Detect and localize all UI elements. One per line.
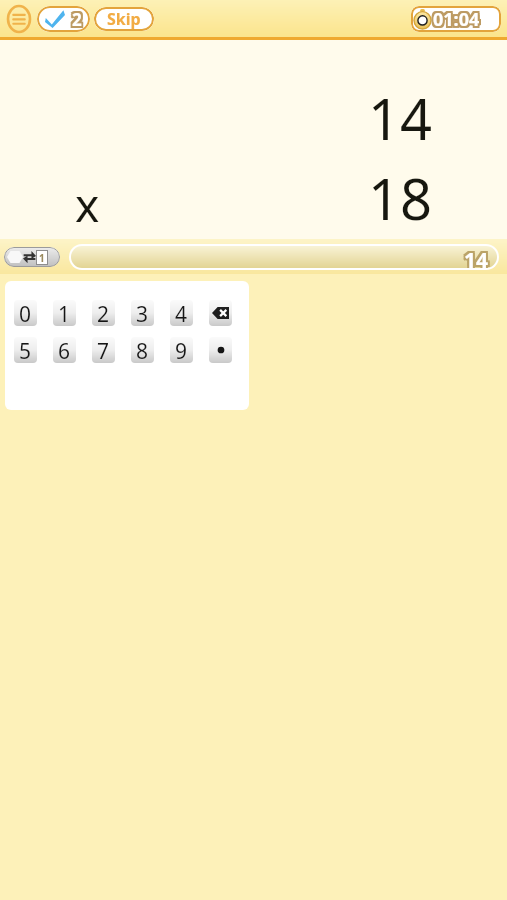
staticText: 2 bbox=[70, 6, 80, 29]
staticText: 14 bbox=[466, 246, 491, 268]
staticText: 14 bbox=[464, 246, 489, 266]
staticText: 14 bbox=[464, 248, 489, 268]
staticText: 2 bbox=[97, 300, 110, 326]
staticText: 7 bbox=[97, 337, 110, 363]
staticText: 01:04 bbox=[431, 6, 478, 30]
staticText: 3 bbox=[136, 300, 149, 326]
staticText: 01:04 bbox=[431, 9, 478, 32]
staticText: 01:04 bbox=[433, 9, 480, 32]
staticText: x bbox=[75, 173, 100, 236]
button[interactable]: Menu bbox=[4, 4, 34, 34]
button[interactable]: 14 bbox=[71, 246, 497, 268]
staticText: 4 bbox=[175, 300, 188, 326]
button[interactable] bbox=[209, 337, 232, 363]
staticText: 14 bbox=[462, 248, 487, 268]
staticText: 2 bbox=[70, 10, 80, 32]
button[interactable]: 7 bbox=[92, 337, 115, 363]
button[interactable]: 4 bbox=[170, 300, 193, 326]
button[interactable]: 01:04 bbox=[411, 6, 501, 32]
staticText: 1 bbox=[58, 300, 71, 326]
button[interactable]: 0 bbox=[14, 300, 37, 326]
button[interactable]: Backspace bbox=[209, 300, 232, 326]
button[interactable]: 9 bbox=[170, 337, 193, 363]
staticText: 18 bbox=[368, 160, 433, 236]
staticText: 01:04 bbox=[433, 7, 480, 32]
staticText: 9 bbox=[175, 337, 188, 363]
staticText: 2 bbox=[74, 10, 84, 32]
button[interactable]: 1 bbox=[53, 300, 76, 326]
staticText: 14 bbox=[462, 246, 487, 266]
staticText: 01:04 bbox=[435, 9, 482, 32]
staticText: 14 bbox=[462, 246, 487, 268]
staticText: Skip bbox=[107, 8, 141, 30]
staticText: 2 bbox=[74, 6, 84, 29]
staticText: 6 bbox=[58, 337, 71, 363]
staticText: 14 bbox=[464, 246, 489, 268]
staticText: 01:04 bbox=[431, 7, 478, 32]
staticText: 14 bbox=[466, 248, 491, 268]
staticText: 01:04 bbox=[435, 7, 482, 32]
staticText: 8 bbox=[136, 337, 149, 363]
staticText: 2 bbox=[72, 8, 82, 31]
staticText: 14 bbox=[368, 80, 433, 156]
staticText: 5 bbox=[19, 337, 32, 363]
button[interactable]: 2 bbox=[37, 6, 90, 32]
staticText: 0 bbox=[19, 300, 32, 326]
staticText: 01:04 bbox=[433, 6, 480, 30]
button[interactable]: 3 bbox=[131, 300, 154, 326]
button[interactable]: Swap operands bbox=[4, 247, 60, 267]
button[interactable]: Skip bbox=[94, 7, 154, 31]
button[interactable]: 8 bbox=[131, 337, 154, 363]
button[interactable]: 6 bbox=[53, 337, 76, 363]
staticText: 2 bbox=[74, 8, 84, 31]
staticText: 1 bbox=[39, 251, 45, 265]
button[interactable]: 2 bbox=[92, 300, 115, 326]
staticText: 2 bbox=[72, 10, 82, 32]
staticText: 2 bbox=[72, 6, 82, 29]
staticText: 14 bbox=[466, 246, 491, 266]
staticText: 01:04 bbox=[435, 6, 482, 30]
button[interactable]: 5 bbox=[14, 337, 37, 363]
staticText: 2 bbox=[70, 8, 80, 31]
